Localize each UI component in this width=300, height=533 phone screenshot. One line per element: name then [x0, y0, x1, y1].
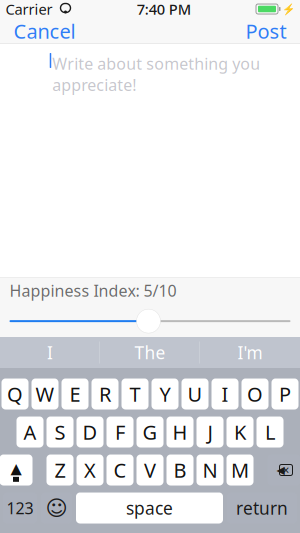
- staticText: I'm: [237, 341, 262, 364]
- button[interactable]: M: [226, 454, 253, 485]
- button[interactable]: T: [121, 378, 148, 409]
- button[interactable]: G: [136, 416, 163, 447]
- button[interactable]: Cancel: [5, 12, 83, 50]
- staticText: I: [47, 341, 53, 364]
- staticText: ×: [282, 462, 289, 478]
- button[interactable]: F: [106, 416, 133, 447]
- staticText: W: [35, 381, 54, 407]
- staticText: R: [99, 381, 111, 407]
- staticText: return: [236, 496, 288, 519]
- button[interactable]: The: [100, 337, 200, 368]
- button[interactable]: K: [226, 416, 253, 447]
- staticText: F: [115, 419, 125, 445]
- staticText: L: [265, 419, 275, 445]
- staticText: Y: [159, 381, 170, 407]
- staticText: P: [279, 381, 291, 407]
- staticText: Q: [7, 381, 23, 407]
- staticText: ⚡: [281, 3, 294, 15]
- button[interactable]: J: [196, 416, 223, 447]
- staticText: Carrier: [5, 0, 52, 19]
- staticText: I: [221, 381, 228, 407]
- staticText: Happiness Index: 5/10: [9, 280, 176, 301]
- staticText: space: [126, 496, 173, 519]
- button[interactable]: return: [227, 492, 297, 523]
- staticText: A: [23, 419, 36, 445]
- button[interactable]: Z: [46, 454, 73, 485]
- button[interactable]: D: [76, 416, 103, 447]
- button[interactable]: B: [166, 454, 193, 485]
- staticText: E: [69, 381, 80, 407]
- button[interactable]: Emoji: [41, 492, 72, 523]
- button[interactable]: X: [76, 454, 103, 485]
- button[interactable]: V: [136, 454, 163, 485]
- staticText: 123: [6, 497, 33, 519]
- button[interactable]: Shift: [0, 454, 32, 485]
- button[interactable]: O: [241, 378, 268, 409]
- button[interactable]: P: [271, 378, 298, 409]
- button[interactable]: W: [31, 378, 58, 409]
- button[interactable]: I: [211, 378, 238, 409]
- staticText: U: [187, 381, 202, 407]
- staticText: N: [202, 457, 217, 483]
- button[interactable]: R: [91, 378, 118, 409]
- staticText: S: [54, 419, 65, 445]
- button[interactable]: I: [0, 337, 100, 368]
- button[interactable]: C: [106, 454, 133, 485]
- button[interactable]: S: [46, 416, 73, 447]
- staticText: M: [231, 457, 249, 483]
- staticText: 7:40 PM: [137, 0, 191, 19]
- staticText: Post: [245, 18, 286, 44]
- button[interactable]: E: [61, 378, 88, 409]
- staticText: Write about something you appreciate!: [52, 53, 260, 95]
- button[interactable]: space: [76, 492, 223, 523]
- button[interactable]: Post: [237, 12, 294, 50]
- staticText: The: [134, 341, 165, 364]
- staticText: J: [207, 419, 212, 445]
- staticText: ☺: [45, 496, 67, 520]
- button[interactable]: 123: [3, 492, 37, 523]
- button[interactable]: A: [16, 416, 43, 447]
- button[interactable]: L: [256, 416, 283, 447]
- staticText: ▲: [10, 460, 21, 477]
- button[interactable]: Delete: [267, 454, 300, 485]
- staticText: [52, 0, 56, 19]
- staticText: Cancel: [13, 18, 75, 44]
- staticText: T: [129, 381, 140, 407]
- staticText: V: [144, 457, 156, 483]
- staticText: C: [113, 457, 126, 483]
- staticText: K: [234, 419, 246, 445]
- button[interactable]: I'm: [200, 337, 300, 368]
- staticText: Z: [54, 457, 65, 483]
- staticText: ◀: [276, 464, 284, 476]
- button[interactable]: U: [181, 378, 208, 409]
- button[interactable]: H: [166, 416, 193, 447]
- button[interactable]: N: [196, 454, 223, 485]
- button[interactable]: Y: [151, 378, 178, 409]
- staticText: H: [172, 419, 187, 445]
- staticText: B: [173, 457, 186, 483]
- staticText: X: [84, 457, 96, 483]
- staticText: O: [247, 381, 263, 407]
- staticText: D: [82, 419, 97, 445]
- staticText: G: [142, 419, 157, 445]
- button[interactable]: Q: [1, 378, 28, 409]
